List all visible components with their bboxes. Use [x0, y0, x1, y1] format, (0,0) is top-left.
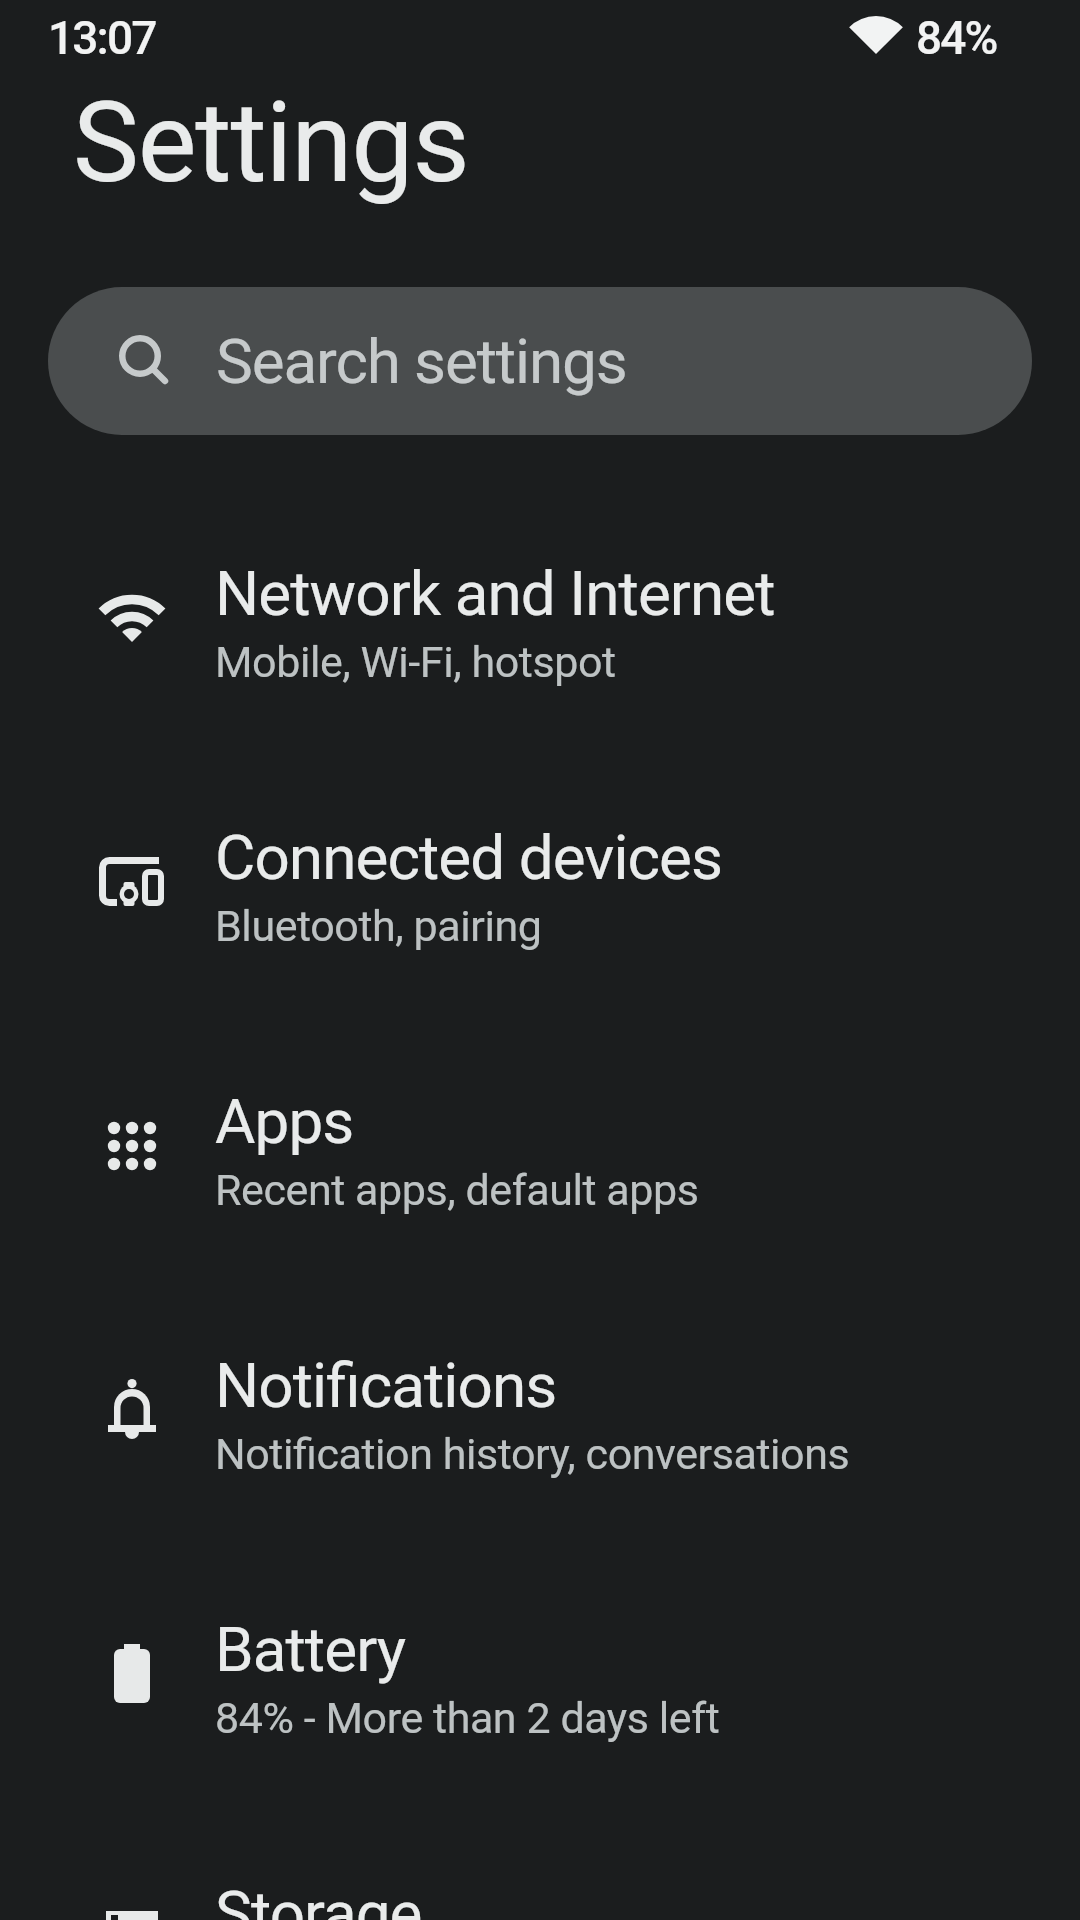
button[interactable]: Notifications — [0, 1282, 1080, 1546]
staticText: Recent apps, default apps — [215, 1165, 699, 1215]
button[interactable]: Connected devices — [0, 754, 1080, 1018]
staticText: Connected devices — [215, 821, 723, 894]
staticText: Apps — [215, 1085, 354, 1158]
button[interactable]: Storage — [0, 1810, 1080, 1920]
staticText: Notification history, conversations — [215, 1429, 850, 1479]
button[interactable]: Search settings — [48, 287, 1032, 435]
staticText: 84% — [916, 11, 997, 65]
staticText: 13:07 — [48, 11, 156, 65]
staticText: Battery — [215, 1613, 406, 1686]
staticText: Storage — [215, 1877, 422, 1920]
staticText: Notifications — [215, 1349, 557, 1422]
staticText: 84% - More than 2 days left — [215, 1693, 720, 1743]
staticText: Bluetooth, pairing — [215, 901, 542, 951]
button[interactable]: Network and Internet — [0, 490, 1080, 754]
button[interactable]: Apps — [0, 1018, 1080, 1282]
staticText: Settings — [73, 78, 469, 208]
staticText: Search settings — [216, 325, 627, 398]
staticText: Network and Internet — [215, 557, 775, 630]
button[interactable]: Battery — [0, 1546, 1080, 1810]
staticText: Mobile, Wi-Fi, hotspot — [215, 637, 616, 687]
